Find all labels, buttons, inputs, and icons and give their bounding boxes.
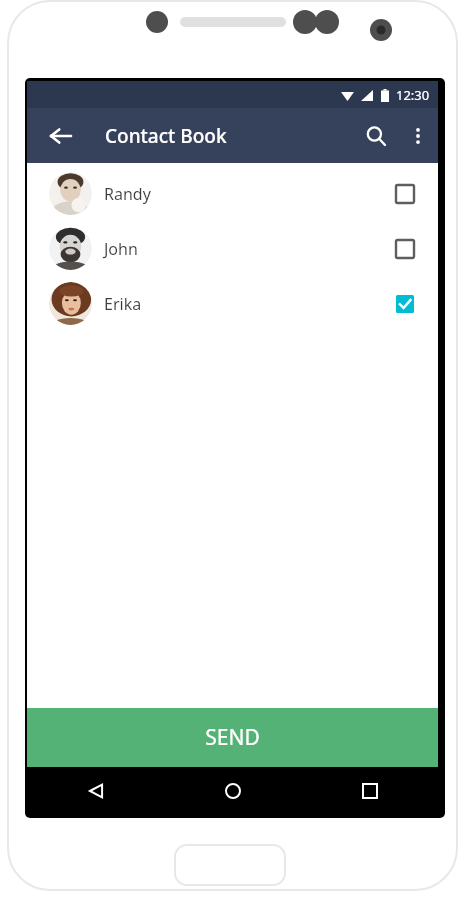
button[interactable]: More options bbox=[398, 116, 438, 156]
button[interactable]: Home bbox=[164, 767, 301, 815]
button[interactable]: Back bbox=[41, 116, 81, 156]
button[interactable]: Randy bbox=[27, 166, 438, 221]
button[interactable]: Search bbox=[354, 114, 398, 158]
staticText: Randy bbox=[104, 183, 151, 205]
button[interactable]: Selected bbox=[391, 290, 419, 318]
button[interactable]: Recent apps bbox=[301, 767, 438, 815]
button[interactable]: Not selected bbox=[391, 235, 419, 263]
staticText: 12:30 bbox=[396, 86, 430, 104]
button[interactable]: Not selected bbox=[391, 180, 419, 208]
button[interactable]: John bbox=[27, 221, 438, 276]
staticText: Contact Book bbox=[105, 123, 227, 149]
staticText: John bbox=[104, 238, 138, 260]
staticText: Erika bbox=[104, 293, 142, 315]
staticText: SEND bbox=[205, 723, 260, 752]
button[interactable]: Erika bbox=[27, 276, 438, 331]
button[interactable]: Back bbox=[27, 767, 164, 815]
button[interactable]: SEND bbox=[27, 708, 438, 767]
